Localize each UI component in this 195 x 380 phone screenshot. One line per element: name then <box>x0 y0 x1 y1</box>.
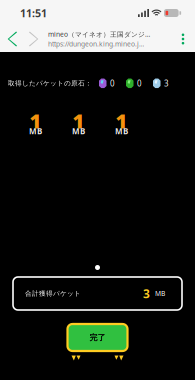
staticText: 1 <box>115 107 127 134</box>
button[interactable]: Forward <box>23 28 43 50</box>
staticText: MB <box>29 126 42 136</box>
staticText: 0 <box>110 78 115 89</box>
staticText: 合計獲得パケット <box>25 289 81 298</box>
button[interactable]: Menu <box>174 28 192 50</box>
staticText: 0 <box>137 78 142 89</box>
staticText: 取得したパケットの原石： <box>8 79 92 87</box>
staticText: https://dungeon.king.mineo.j… <box>48 39 144 48</box>
staticText: MB <box>72 126 85 136</box>
staticText: 完了 <box>89 333 105 342</box>
staticText: 1 <box>72 107 84 134</box>
button[interactable]: Back <box>3 28 23 50</box>
staticText: MB <box>155 289 165 298</box>
button[interactable]: 完了 <box>67 324 127 351</box>
staticText: mineo（マイネオ）王国ダンジ… <box>48 30 150 38</box>
staticText: 3 <box>143 285 150 301</box>
staticText: MB <box>115 126 128 136</box>
staticText: 3 <box>164 78 169 89</box>
button[interactable]: mineo（マイネオ）王国ダンジ… <box>43 28 156 50</box>
staticText: 1 <box>29 107 41 134</box>
staticText: 11:51 <box>20 6 47 20</box>
